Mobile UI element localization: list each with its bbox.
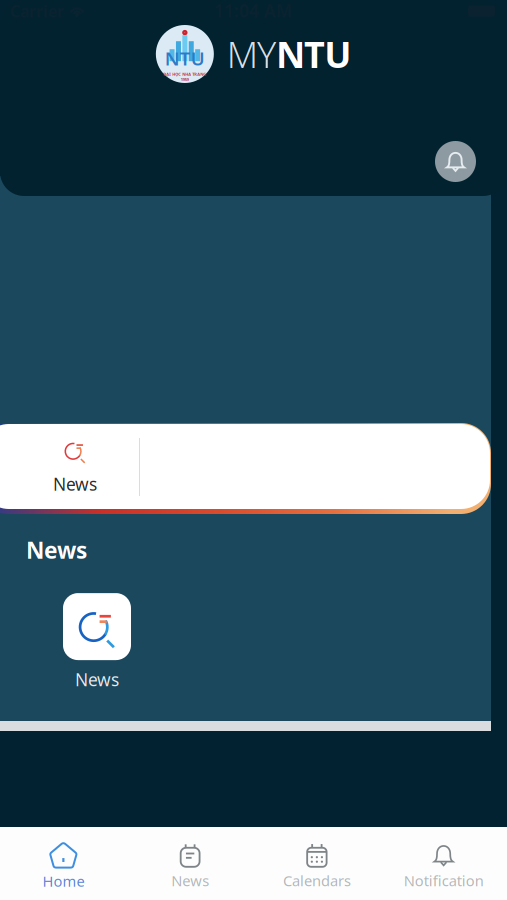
staticText: 11:04 AM [214,0,292,22]
staticText: News [75,668,119,691]
button[interactable]: Notifications [435,141,476,182]
button[interactable]: News [11,424,139,509]
staticText: News [53,472,97,495]
staticText: Calendars [283,871,351,890]
button[interactable]: Home [0,821,127,900]
button[interactable]: News [127,822,254,900]
staticText: MY [227,30,276,78]
staticText: NTU [276,30,351,78]
staticText: Notification [404,871,484,890]
staticText: NTU [165,46,205,71]
staticText: 1959 [181,77,189,82]
button[interactable]: Notification [380,822,507,900]
button[interactable]: Calendars [253,822,380,900]
staticText: ĐẠI HỌC NHA TRANG [163,72,206,77]
staticText: News [171,871,209,890]
staticText: News [26,535,87,565]
button[interactable]: News [51,593,143,691]
staticText: Home [42,871,84,891]
